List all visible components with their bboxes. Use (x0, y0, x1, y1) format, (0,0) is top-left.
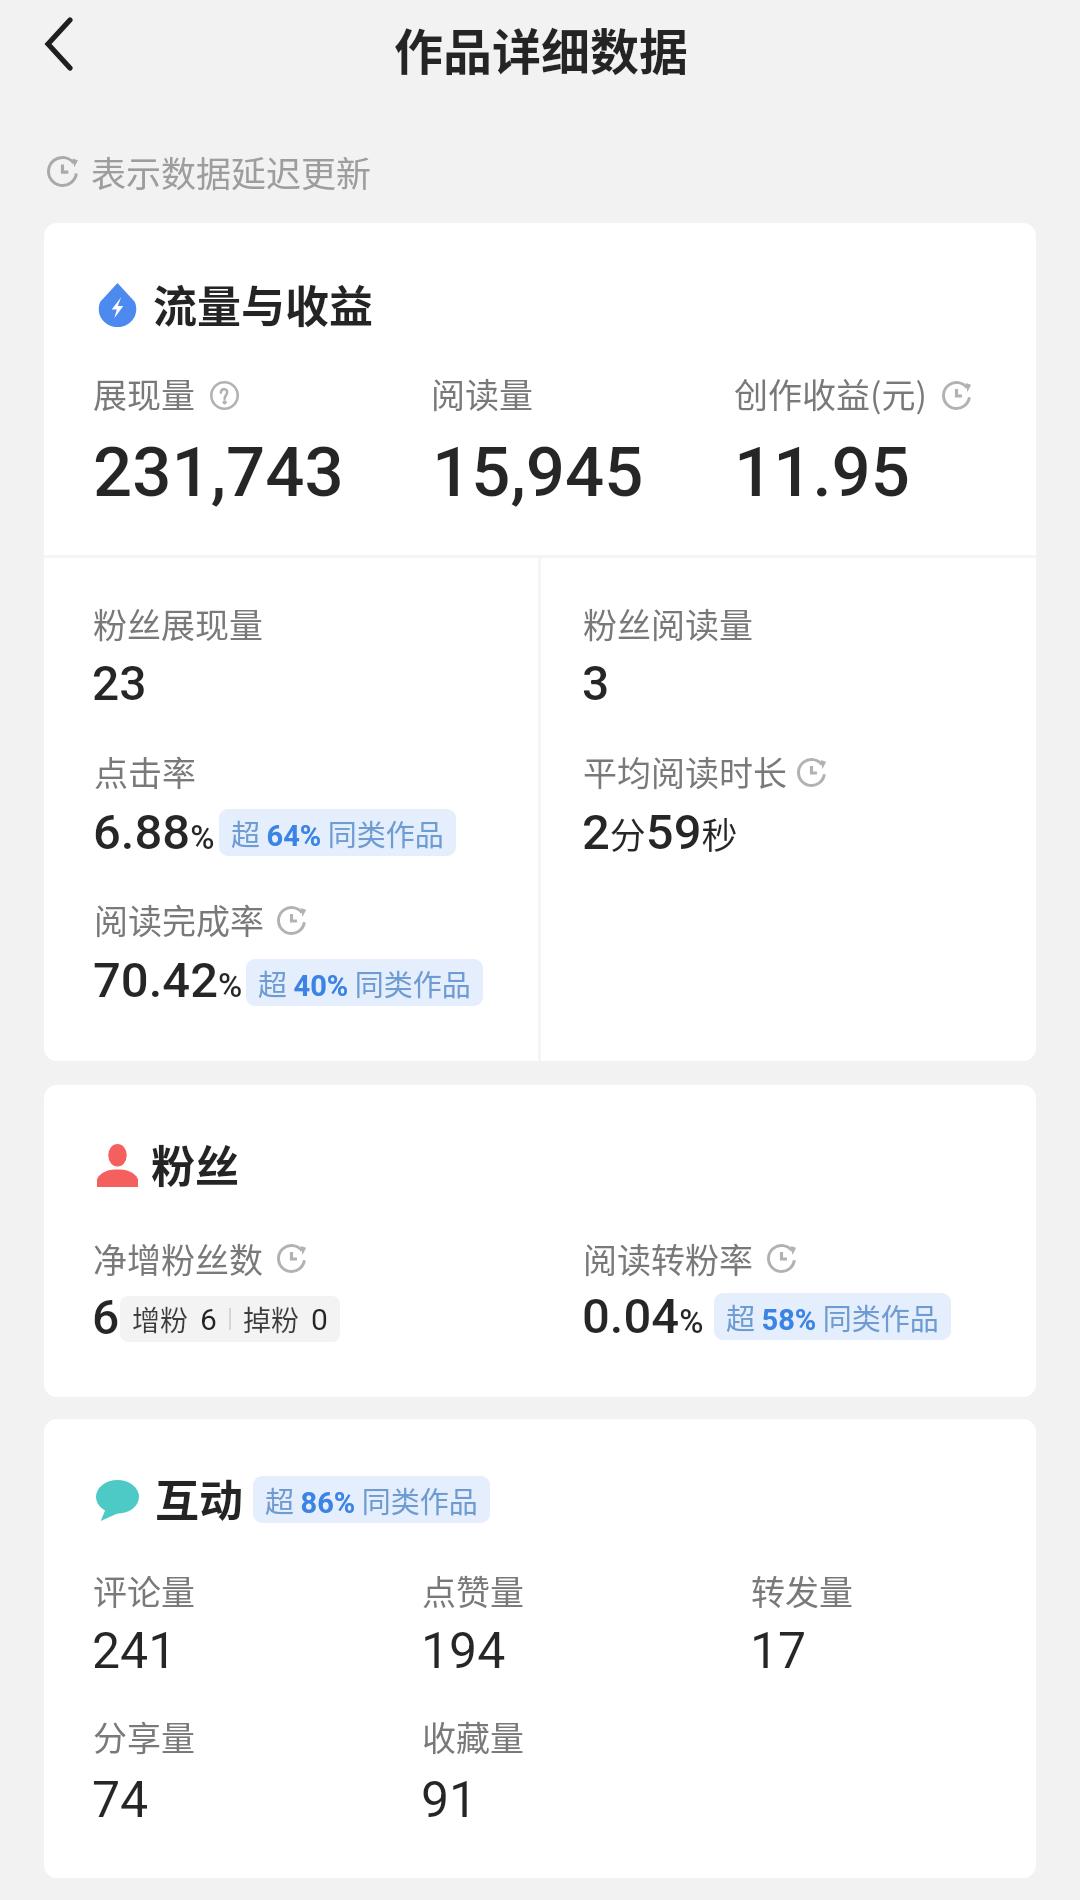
button[interactable]: What is impressions (210, 381, 239, 410)
staticText: 70.42% (93, 952, 243, 1009)
button[interactable]: 转发量 17 (732, 1559, 1012, 1679)
staticText: 点赞量 (422, 1566, 524, 1615)
button[interactable]: 点击率 6.88% (74, 738, 534, 858)
button[interactable]: 粉丝展现量 23 (74, 588, 534, 698)
staticText: 表示数据延迟更新 (91, 146, 372, 197)
staticText: 3 (582, 655, 610, 711)
button[interactable]: 超 40% 同类作品 (246, 959, 483, 1006)
staticText: 粉丝阅读量 (583, 599, 753, 648)
button[interactable]: Back (14, 0, 102, 90)
staticText: 掉粉 (243, 1299, 300, 1340)
staticText: 17 (750, 1622, 807, 1681)
button[interactable]: Data delayed (47, 156, 78, 187)
button[interactable]: 增粉 (120, 1296, 340, 1342)
staticText: 0 (311, 1302, 328, 1337)
staticText: 展现量 (93, 369, 195, 418)
button[interactable]: Completion rate delayed (277, 906, 306, 935)
staticText: 0.04% (582, 1288, 704, 1345)
staticText: 互动 (155, 1466, 243, 1530)
staticText: 超 64% 同类作品 (231, 812, 444, 854)
button[interactable]: 净增粉丝数 6 (74, 1225, 534, 1345)
staticText: 阅读转粉率 (583, 1234, 753, 1283)
button[interactable]: Follow conversion delayed (767, 1244, 796, 1273)
button[interactable]: 粉丝阅读量 3 (564, 588, 1024, 698)
staticText: 增粉 (132, 1299, 189, 1340)
staticText: 粉丝展现量 (93, 599, 263, 648)
staticText: 6.88% (93, 804, 215, 861)
staticText: 净增粉丝数 (93, 1234, 263, 1283)
staticText: 分享量 (93, 1712, 195, 1761)
staticText: 平均阅读时长 (583, 747, 787, 796)
staticText: 超 86% 同类作品 (265, 1479, 478, 1521)
staticText: 流量与收益 (153, 272, 373, 336)
staticText: 74 (92, 1771, 149, 1830)
staticText: 转发量 (751, 1566, 853, 1615)
button[interactable]: 点赞量 194 (403, 1559, 723, 1679)
button[interactable]: 阅读完成率 70.42% (74, 888, 534, 1008)
button[interactable]: 超 64% 同类作品 (219, 809, 456, 856)
button[interactable]: 阅读量 15,945 (422, 363, 722, 513)
staticText: 15,945 (432, 432, 644, 513)
staticText: 91 (421, 1771, 478, 1830)
staticText: 11.95 (734, 432, 911, 513)
staticText: 点击率 (94, 747, 196, 796)
button[interactable]: Average read time delayed (797, 758, 826, 787)
staticText: 194 (421, 1622, 506, 1681)
button[interactable]: 评论量 241 (74, 1559, 394, 1679)
button[interactable]: 超 58% 同类作品 (714, 1293, 951, 1340)
button[interactable]: 超 86% 同类作品 (253, 1476, 490, 1523)
staticText: 241 (92, 1622, 177, 1681)
staticText: 6 (92, 1289, 120, 1345)
staticText: 创作收益(元) (734, 369, 927, 418)
button[interactable]: New followers delayed (277, 1244, 306, 1273)
button[interactable]: 收藏量 91 (403, 1705, 723, 1825)
staticText: 6 (200, 1302, 217, 1337)
staticText: 超 58% 同类作品 (726, 1296, 939, 1338)
staticText: 231,743 (93, 432, 344, 513)
staticText: 收藏量 (422, 1712, 524, 1761)
staticText: 超 40% 同类作品 (258, 962, 471, 1004)
staticText: 23 (92, 655, 147, 711)
button[interactable]: 创作收益(元) 11.95 (725, 363, 995, 513)
staticText: 评论量 (93, 1566, 195, 1615)
staticText: 粉丝 (151, 1132, 239, 1196)
button[interactable]: 阅读转粉率 0.04% (564, 1225, 1024, 1345)
staticText: 作品详细数据 (394, 13, 689, 84)
button[interactable]: 展现量 231,743 (84, 363, 404, 513)
button[interactable]: Revenue data delayed (942, 381, 971, 410)
staticText: 2分59秒 (582, 804, 738, 861)
button[interactable]: 分享量 74 (74, 1705, 394, 1825)
staticText: 阅读量 (431, 369, 533, 418)
button[interactable]: 平均阅读时长 2分59秒 (564, 738, 1024, 858)
staticText: 阅读完成率 (94, 895, 264, 944)
